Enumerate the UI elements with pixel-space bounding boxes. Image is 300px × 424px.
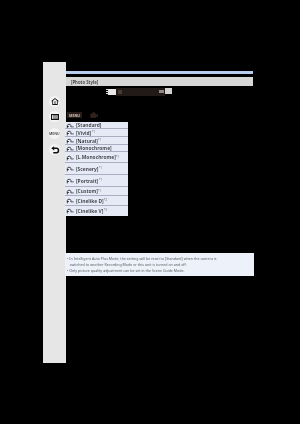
button[interactable]: Menu	[49, 128, 60, 139]
staticText: switched to another Recording Mode or th…	[67, 262, 187, 267]
staticText: *1	[98, 189, 101, 193]
staticText: [Photo Style]	[71, 79, 99, 85]
staticText: • In Intelligent Auto Plus Mode, the set…	[67, 256, 217, 261]
staticText: [Scenery]	[76, 166, 99, 173]
button[interactable]: [Standard]	[65, 122, 128, 129]
staticText: [Vivid]	[76, 130, 92, 137]
button[interactable]: [Cinelike D]	[65, 196, 128, 206]
staticText: [Monochrome]	[76, 145, 112, 152]
staticText: *1	[92, 130, 95, 134]
staticText: *1	[99, 166, 102, 170]
staticText: MENU	[69, 113, 81, 118]
button[interactable]: [Scenery]	[65, 163, 128, 175]
staticText: MENU	[49, 131, 60, 136]
staticText: [L.Monochrome]	[76, 154, 116, 161]
staticText: *1	[116, 155, 119, 159]
staticText: [Portrait]	[76, 178, 99, 185]
button[interactable]: [Portrait]	[65, 175, 128, 187]
staticText: [Custom]	[76, 188, 98, 195]
button[interactable]: [Vivid]	[65, 129, 128, 137]
staticText: [Cinelike V]	[76, 208, 104, 215]
button[interactable]: [Natural]	[65, 137, 128, 145]
button[interactable]: Back	[49, 144, 60, 155]
button[interactable]: [Cinelike V]	[65, 206, 128, 216]
staticText: [Standard]	[76, 122, 102, 129]
staticText: • Only picture quality adjustment can be…	[67, 268, 185, 273]
button[interactable]: [L.Monochrome]	[65, 152, 128, 163]
button[interactable]: MENU	[67, 112, 82, 118]
staticText: *2	[104, 198, 107, 202]
staticText: *2	[104, 208, 107, 212]
button[interactable]: [Monochrome]	[65, 145, 128, 152]
staticText: [Cinelike D]	[76, 198, 104, 205]
staticText: *1	[99, 178, 102, 182]
staticText: *1	[98, 138, 101, 142]
button[interactable]: Home	[49, 96, 60, 107]
staticText: [Natural]	[76, 138, 98, 145]
button[interactable]: [Custom]	[65, 187, 128, 196]
button[interactable]: Display	[49, 111, 60, 122]
